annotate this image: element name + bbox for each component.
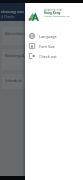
staticText: Alumni Association Ltd — [44, 14, 70, 17]
staticText: Check out — [39, 54, 57, 59]
staticText: Booking A — [5, 53, 25, 58]
staticText: 香港中文大學 — [44, 8, 62, 12]
button[interactable]: Attendance — [2, 27, 81, 45]
staticText: cheung van on — [1, 9, 31, 15]
button[interactable]: Font Size — [25, 41, 83, 51]
staticText: Attendance — [5, 31, 27, 36]
button[interactable]: Booking A — [2, 49, 81, 70]
staticText: Language — [39, 34, 57, 39]
button[interactable]: Schedule — [2, 74, 81, 89]
other: Language — [29, 33, 35, 39]
staticText: Font Size — [39, 44, 55, 49]
other: Font Size — [29, 43, 35, 49]
staticText: Schedule — [5, 78, 23, 83]
button[interactable]: Language — [25, 31, 83, 41]
staticText: 4 Checks — [1, 15, 15, 19]
button[interactable]: Check out — [25, 51, 83, 61]
other: Check out — [29, 53, 35, 59]
staticText: Hong Kong — [44, 11, 61, 15]
